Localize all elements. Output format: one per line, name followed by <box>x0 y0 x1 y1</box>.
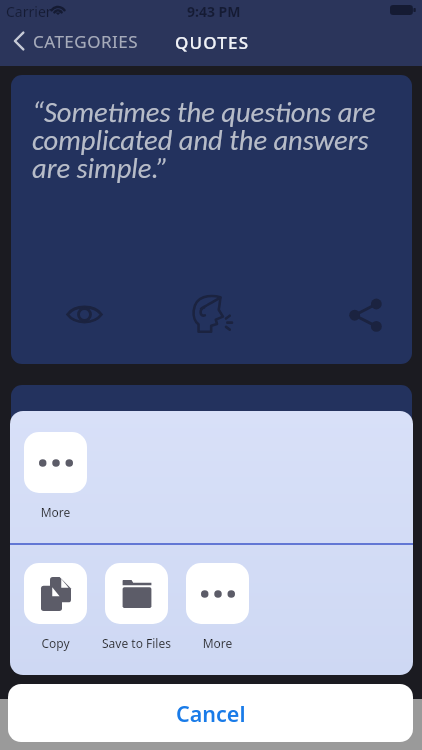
button[interactable]: More <box>10 432 105 493</box>
staticText: 9:43 PM <box>187 2 241 21</box>
staticText: QUOTES <box>175 31 250 54</box>
button[interactable]: “Sometimes the questions are complicated… <box>11 75 412 364</box>
button[interactable] <box>11 385 412 674</box>
button[interactable]: Save to Files <box>87 563 186 624</box>
staticText: “Sometimes the questions are complicated… <box>32 95 384 186</box>
button[interactable]: Cancel <box>8 684 413 742</box>
staticText: Carrier <box>6 2 52 21</box>
staticText: Save to Files <box>87 635 186 651</box>
button[interactable]: More <box>168 563 267 624</box>
button[interactable]: CATEGORIES <box>0 21 139 61</box>
button[interactable]: View <box>57 287 111 341</box>
staticText: Copy <box>10 635 105 651</box>
button[interactable]: Copy <box>10 563 105 624</box>
staticText: More <box>168 635 267 651</box>
staticText: Cancel <box>176 699 246 728</box>
staticText: More <box>10 504 105 520</box>
button[interactable]: Share <box>338 287 392 341</box>
staticText: CATEGORIES <box>33 30 139 53</box>
button[interactable]: Speak <box>185 287 239 341</box>
